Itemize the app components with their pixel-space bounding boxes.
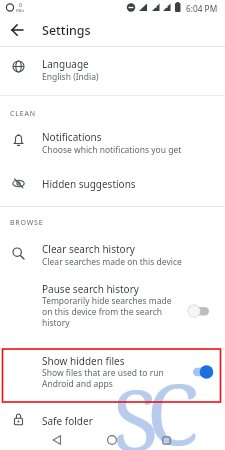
button[interactable]: Clear search history: [0, 232, 225, 272]
staticText: Safe folder: [42, 414, 93, 428]
button[interactable]: [188, 364, 214, 380]
staticText: Clear search history: [42, 242, 135, 256]
staticText: Hidden suggestions: [42, 177, 136, 191]
staticText: Notifications: [42, 130, 102, 144]
staticText: Choose which notifications you get: [42, 144, 182, 156]
button[interactable]: [186, 303, 212, 319]
staticText: Language: [42, 57, 89, 71]
button[interactable]: [154, 430, 178, 450]
staticText: 0: [19, 1, 23, 8]
staticText: BROWSE: [10, 218, 44, 228]
button[interactable]: Safe folder: [0, 407, 225, 432]
staticText: 6:04 PM: [186, 3, 218, 14]
staticText: CLEAN: [10, 109, 36, 119]
staticText: Temporarily hide searches made on this d…: [42, 295, 172, 328]
button[interactable]: Hidden suggestions: [0, 162, 225, 204]
staticText: KB/s: [16, 8, 25, 13]
staticText: English (India): [42, 71, 99, 83]
button[interactable]: Pause search history: [0, 272, 225, 340]
staticText: Settings: [42, 22, 91, 39]
button[interactable]: Notifications: [0, 122, 225, 162]
staticText: Show hidden files: [42, 354, 125, 368]
button[interactable]: [45, 430, 69, 450]
staticText: Clear searches made on this device: [42, 256, 182, 268]
button[interactable]: [100, 430, 124, 450]
button[interactable]: [0, 15, 36, 45]
staticText: S: [113, 361, 159, 450]
staticText: Pause search history: [42, 282, 139, 296]
staticText: Show files that are used to run Android …: [42, 367, 164, 389]
button[interactable]: Language: [0, 46, 225, 95]
button[interactable]: Show hidden files: [0, 346, 225, 402]
staticText: C: [147, 355, 199, 450]
